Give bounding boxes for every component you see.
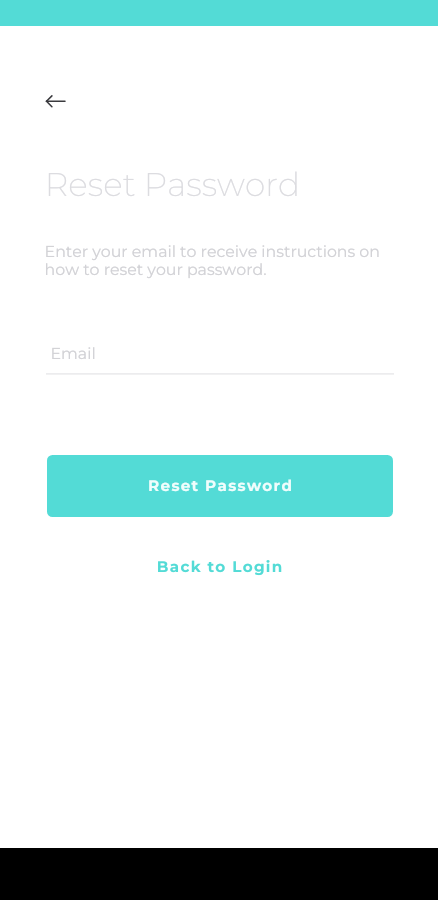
button[interactable]: Back xyxy=(24,79,68,123)
button[interactable]: Reset Password xyxy=(47,455,393,517)
button[interactable]: Back to Login xyxy=(139,548,300,584)
button[interactable]: Email xyxy=(46,340,394,376)
